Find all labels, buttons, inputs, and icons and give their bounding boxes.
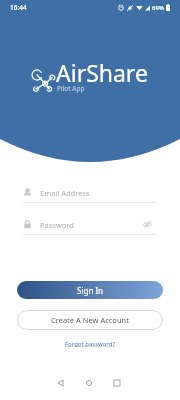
button[interactable]: Recents bbox=[106, 372, 128, 394]
staticText: AirShare bbox=[56, 57, 148, 88]
button[interactable]: Sign In bbox=[17, 281, 163, 299]
staticText: Sign In bbox=[77, 285, 104, 296]
staticText: Password bbox=[40, 220, 74, 230]
button[interactable]: Back bbox=[50, 372, 72, 394]
staticText: Forgot password? bbox=[65, 340, 116, 348]
button[interactable]: Email Address bbox=[23, 183, 157, 203]
staticText: 16:44 bbox=[10, 3, 27, 12]
staticText: 69% bbox=[152, 4, 164, 12]
staticText: Pilot App bbox=[57, 84, 85, 93]
button[interactable]: Show password bbox=[142, 219, 153, 230]
staticText: Create A New Account bbox=[51, 315, 129, 325]
button[interactable]: Create A New Account bbox=[17, 310, 163, 330]
button[interactable]: Forgot password? bbox=[63, 338, 118, 350]
staticText: Email Address bbox=[40, 188, 90, 198]
button[interactable]: Home bbox=[78, 372, 100, 394]
button[interactable]: Password bbox=[23, 215, 157, 235]
